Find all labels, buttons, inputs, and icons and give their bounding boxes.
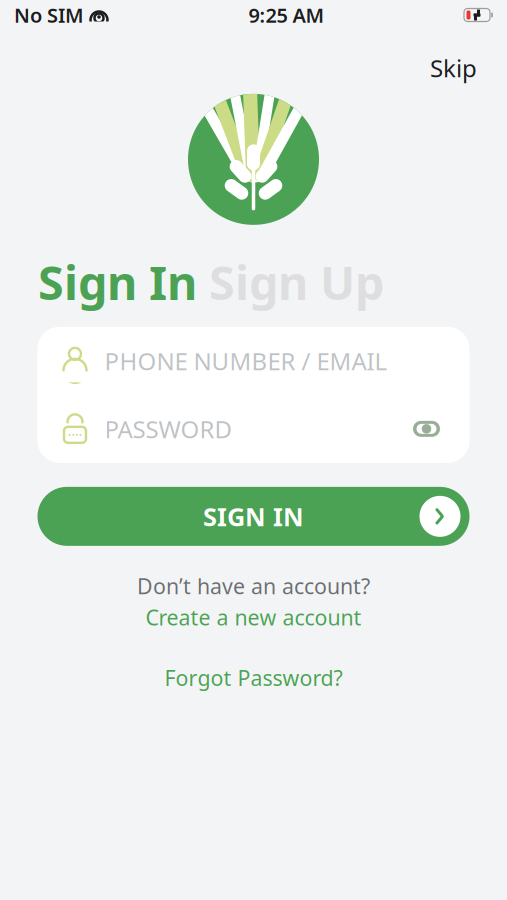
button[interactable]: Sign In: [38, 251, 197, 313]
staticText: Don’t have an account?: [137, 572, 370, 600]
button[interactable]: Forgot Password?: [152, 657, 354, 698]
staticText: Sign In: [38, 251, 197, 313]
button[interactable]: Sign Up: [197, 251, 384, 313]
button[interactable]: Create a new account: [135, 601, 371, 633]
button[interactable]: Skip: [416, 44, 491, 92]
staticText: 9:25 AM: [248, 2, 324, 28]
staticText: PASSWORD: [104, 413, 232, 445]
staticText: Create a new account: [145, 603, 361, 631]
staticText: No SIM: [14, 2, 84, 28]
staticText: PHONE NUMBER / EMAIL: [104, 345, 387, 377]
staticText: Forgot Password?: [164, 663, 342, 692]
staticText: Skip: [430, 52, 477, 84]
button[interactable]: Show password: [407, 415, 445, 443]
staticText: Sign Up: [209, 251, 384, 313]
button[interactable]: SIGN IN: [37, 487, 469, 546]
staticText: SIGN IN: [203, 499, 304, 533]
